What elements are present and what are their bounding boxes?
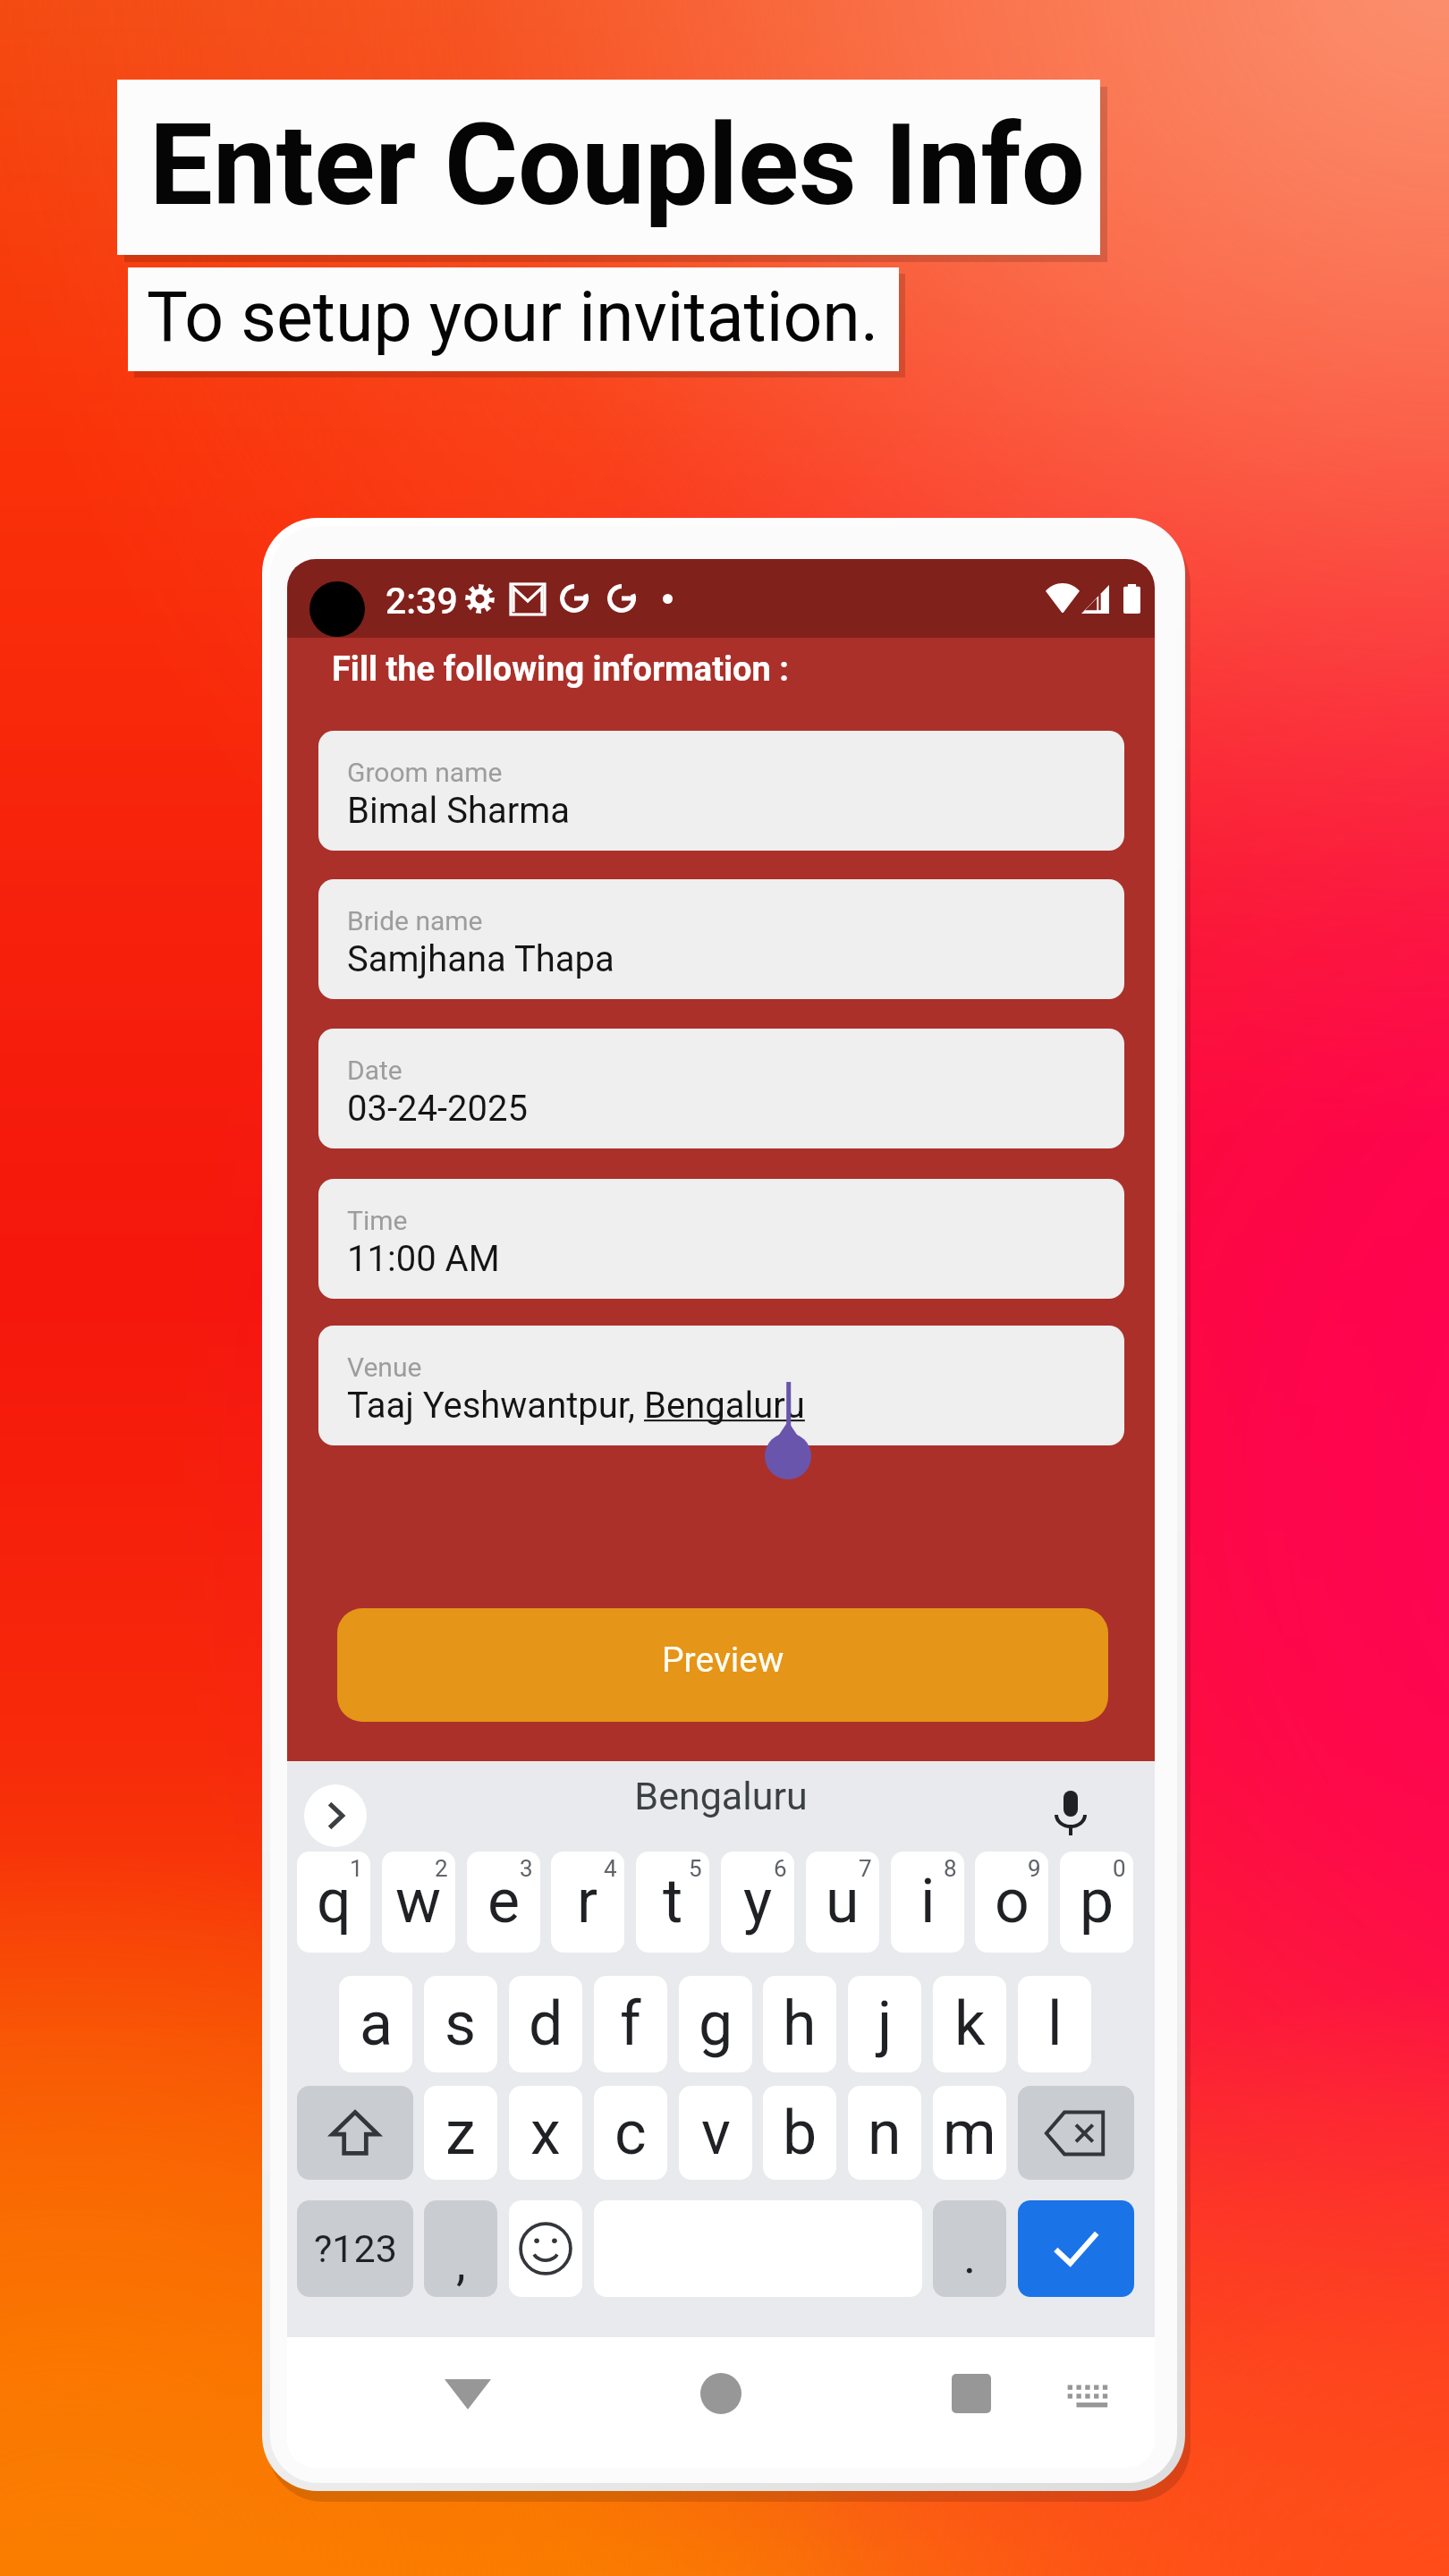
staticText: g [699,1988,733,2060]
button[interactable]: Home [682,2354,760,2433]
button[interactable]: i [891,1851,964,1953]
staticText: l [1047,1988,1063,2060]
staticText: Venue [347,1352,422,1383]
staticText: 6 [774,1855,787,1882]
staticText: 2:39 [386,580,458,623]
staticText: Samjhana Thapa [347,938,614,980]
button[interactable]: Groom name [318,731,1124,851]
button[interactable]: l [1018,1976,1091,2072]
staticText: Bengaluru [287,1774,1155,1818]
button[interactable]: w [382,1851,455,1953]
staticText: a [360,1988,393,2060]
staticText: Enter Couples Info [149,99,1085,232]
staticText: n [868,2097,902,2169]
button[interactable]: n [848,2086,921,2180]
button[interactable]: x [509,2086,582,2180]
staticText: j [877,1988,893,2060]
staticText: . [963,2228,977,2284]
button[interactable]: o [975,1851,1048,1953]
staticText: 8 [944,1855,957,1882]
staticText: Bimal Sharma [347,790,571,832]
staticText: Bengaluru [644,1385,805,1427]
staticText: 1 [350,1855,363,1882]
staticText: Time [347,1205,408,1236]
button[interactable]: Symbols [297,2200,413,2297]
staticText: p [1080,1866,1114,1937]
staticText: Groom name [347,757,503,788]
staticText: u [826,1866,860,1937]
button[interactable]: Time [318,1179,1124,1299]
staticText: m [943,2097,996,2169]
staticText: e [487,1866,521,1937]
staticText: d [529,1988,563,2060]
button[interactable]: h [763,1976,836,2072]
button[interactable]: Venue [318,1326,1124,1445]
button[interactable]: m [933,2086,1006,2180]
staticText: 0 [1113,1855,1126,1882]
staticText: z [445,2097,476,2169]
staticText: 7 [859,1855,872,1882]
staticText: 4 [604,1855,617,1882]
staticText: f [620,1988,641,2060]
button[interactable]: Emoji [509,2200,582,2297]
button[interactable]: k [933,1976,1006,2072]
staticText: o [995,1866,1030,1937]
button[interactable]: Period [933,2200,1006,2297]
staticText: 11:00 AM [347,1238,500,1280]
staticText: Taaj Yeshwantpur, [347,1385,644,1427]
staticText: 3 [520,1855,533,1882]
staticText: v [701,2097,731,2169]
staticText: s [445,1988,477,2060]
button[interactable]: Shift [297,2086,413,2180]
button[interactable]: v [679,2086,752,2180]
button[interactable]: a [339,1976,412,2072]
staticText: 03-24-2025 [347,1088,528,1130]
staticText: Bride name [347,905,483,936]
button[interactable]: Backspace [1018,2086,1134,2180]
staticText: Fill the following information : [332,649,789,690]
button[interactable]: p [1060,1851,1133,1953]
button[interactable]: d [509,1976,582,2072]
button[interactable]: Expand toolbar [304,1784,367,1847]
button[interactable]: y [721,1851,794,1953]
staticText: 9 [1028,1855,1041,1882]
staticText: y [743,1866,773,1937]
staticText: To setup your invitation. [147,277,879,358]
button[interactable]: u [806,1851,879,1953]
button[interactable]: Comma [424,2200,497,2297]
staticText: i [920,1866,936,1937]
staticText: 5 [689,1855,702,1882]
button[interactable]: j [848,1976,921,2072]
staticText: r [577,1866,598,1937]
staticText: Date [347,1055,402,1086]
button[interactable]: Preview [337,1608,1108,1722]
button[interactable]: c [594,2086,667,2180]
button[interactable]: r [551,1851,624,1953]
staticText: x [530,2097,561,2169]
button[interactable]: Bride name [318,879,1124,999]
button[interactable]: Switch keyboard [1052,2354,1131,2433]
staticText: h [783,1988,817,2060]
staticText: c [614,2097,647,2169]
button[interactable]: Enter [1018,2200,1134,2297]
button[interactable]: f [594,1976,667,2072]
button[interactable]: b [763,2086,836,2180]
button[interactable]: g [679,1976,752,2072]
staticText: w [395,1866,442,1937]
button[interactable]: t [636,1851,709,1953]
staticText: b [783,2097,818,2169]
staticText: t [663,1866,683,1937]
staticText: ?123 [314,2226,397,2271]
staticText: 2 [435,1855,448,1882]
button[interactable]: Back [428,2354,507,2433]
button[interactable]: Voice input [1044,1786,1097,1840]
button[interactable]: q [297,1851,370,1953]
staticText: , [456,2235,466,2292]
staticText: Preview [662,1640,784,1681]
button[interactable]: e [467,1851,540,1953]
button[interactable]: Date [318,1029,1124,1148]
button[interactable]: Recents [932,2354,1011,2433]
button[interactable]: s [424,1976,497,2072]
button[interactable]: z [424,2086,497,2180]
